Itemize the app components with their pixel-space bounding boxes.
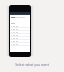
button[interactable] [10,43,30,46]
button[interactable] [10,25,30,28]
button[interactable] [10,34,30,37]
button[interactable] [10,37,30,40]
staticText: Select what you want [15,62,49,67]
button[interactable] [10,40,30,43]
button[interactable] [10,31,30,34]
button[interactable] [10,28,30,31]
